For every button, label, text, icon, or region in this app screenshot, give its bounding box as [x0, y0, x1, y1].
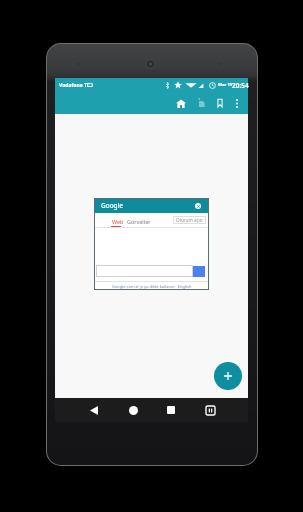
button[interactable]: Home	[172, 94, 190, 112]
staticText: Mar 19	[218, 82, 233, 88]
button[interactable]: Back	[85, 401, 103, 419]
button[interactable]: Close	[195, 203, 201, 209]
button[interactable]: Web	[112, 218, 124, 225]
button[interactable]: Oturum açın	[176, 217, 203, 223]
staticText: Vodafone TR	[59, 82, 91, 89]
button[interactable]: Split screen	[201, 401, 219, 419]
button[interactable]: New page	[192, 94, 210, 112]
staticText: Oturum açın	[176, 217, 203, 223]
button[interactable]: More options	[228, 94, 246, 112]
button[interactable]: Home	[124, 401, 142, 419]
button[interactable]: Recents	[162, 401, 180, 419]
button[interactable]: Bookmarks	[211, 94, 229, 112]
button[interactable]: Görseller	[127, 218, 151, 225]
staticText: Google	[101, 201, 123, 210]
button[interactable]: Add	[214, 362, 242, 390]
staticText: 20:54	[232, 81, 249, 90]
staticText: Google.com.tr'yi şu dilde kullanın: Engl…	[112, 284, 192, 289]
